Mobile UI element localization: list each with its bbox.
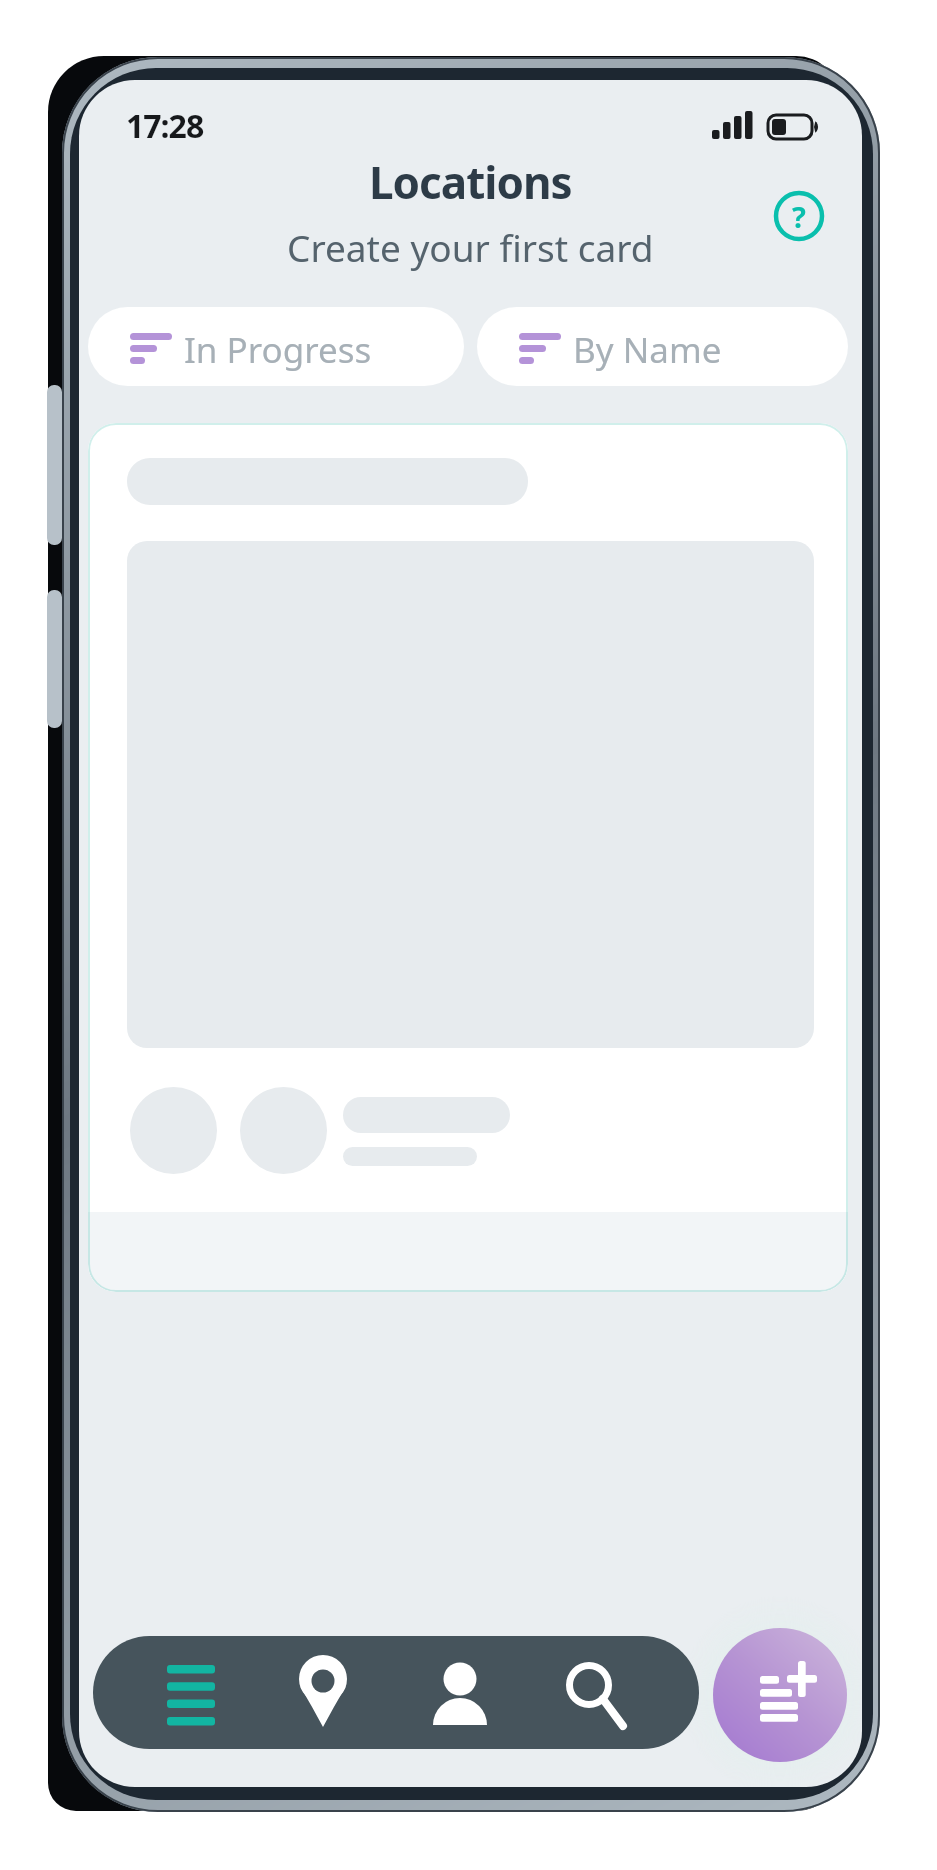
button[interactable]: [400, 1636, 520, 1749]
staticText: ?: [792, 197, 806, 236]
staticText: By Name: [573, 326, 722, 374]
button[interactable]: [131, 1636, 251, 1749]
staticText: 17:28: [126, 104, 204, 148]
button[interactable]: [88, 423, 848, 1292]
button[interactable]: ?: [774, 191, 824, 241]
staticText: In Progress: [184, 326, 372, 374]
button[interactable]: [263, 1636, 383, 1749]
button[interactable]: In Progress: [88, 307, 464, 386]
button[interactable]: By Name: [477, 307, 848, 386]
staticText: Locations: [369, 152, 572, 212]
button[interactable]: [530, 1636, 650, 1749]
staticText: Create your first card: [287, 222, 654, 272]
button[interactable]: [713, 1628, 847, 1762]
